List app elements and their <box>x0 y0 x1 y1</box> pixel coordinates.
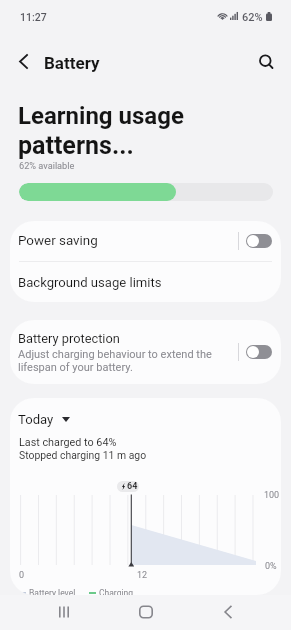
staticText: 62% <box>242 11 263 24</box>
staticText: 0 <box>19 570 25 581</box>
staticText: Adjust charging behaviour to extend the <box>18 348 212 361</box>
staticText: Power saving <box>18 233 98 249</box>
button[interactable]: Home <box>124 600 168 624</box>
staticText: Learning usage <box>18 102 184 130</box>
staticText: Background usage limits <box>18 275 162 290</box>
button[interactable]: Battery protection <box>10 320 281 384</box>
staticText: Charging <box>99 588 133 595</box>
staticText: 62% available <box>19 160 75 171</box>
button[interactable]: Today <box>18 412 70 427</box>
staticText: 11:27 <box>20 11 47 23</box>
staticText: Today <box>18 412 54 427</box>
button[interactable]: Back <box>206 600 250 624</box>
button[interactable]: Toggle <box>246 345 272 359</box>
staticText: 100 <box>264 490 280 501</box>
staticText: 64 <box>127 481 138 492</box>
button[interactable]: Recents <box>42 600 86 624</box>
staticText: 12 <box>137 570 148 581</box>
button[interactable]: Back <box>8 46 40 78</box>
button[interactable]: Power saving <box>10 221 281 261</box>
button[interactable]: Search <box>249 46 281 78</box>
staticText: lifespan of your battery. <box>18 361 133 374</box>
button[interactable]: Toggle <box>246 234 272 248</box>
staticText: Battery <box>44 53 100 73</box>
staticText: Last charged to 64% <box>19 436 117 449</box>
staticText: 0% <box>265 561 277 572</box>
button[interactable]: Background usage limits <box>10 262 281 302</box>
staticText: Stopped charging 11 m ago <box>19 449 147 461</box>
staticText: Battery level <box>29 588 76 595</box>
staticText: patterns... <box>18 131 134 160</box>
staticText: Battery protection <box>18 331 120 346</box>
